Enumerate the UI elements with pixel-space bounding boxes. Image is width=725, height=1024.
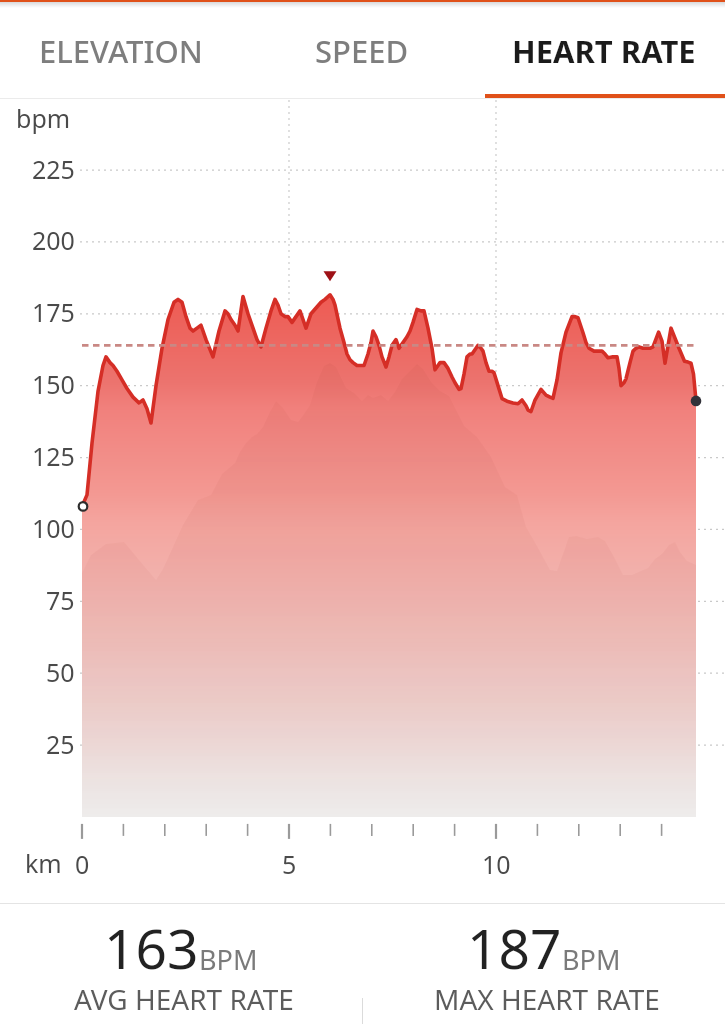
staticText: 5 (282, 847, 297, 881)
staticText: 175 (32, 295, 75, 329)
staticText: 10 (482, 847, 511, 881)
staticText: 163 (104, 910, 199, 985)
button[interactable]: 163 (0, 904, 362, 1024)
staticText: 75 (46, 583, 75, 617)
staticText: 187 (467, 910, 562, 985)
staticText: BPM (199, 941, 258, 978)
button[interactable]: ELEVATION (0, 8, 241, 99)
staticText: 150 (32, 367, 75, 401)
staticText: AVG HEART RATE (74, 980, 294, 1018)
staticText: SPEED (315, 30, 409, 72)
button[interactable]: HEART RATE (483, 8, 725, 99)
staticText: 200 (32, 223, 75, 257)
staticText: km (25, 846, 62, 880)
staticText: 125 (32, 439, 75, 473)
staticText: BPM (562, 941, 621, 978)
staticText: 100 (32, 511, 75, 545)
staticText: HEART RATE (512, 30, 696, 72)
button[interactable]: SPEED (241, 8, 483, 99)
staticText: bpm (16, 101, 71, 135)
button[interactable]: 187 (362, 904, 725, 1024)
staticText: 0 (75, 847, 90, 881)
staticText: 50 (46, 655, 75, 689)
staticText: 225 (32, 152, 75, 186)
staticText: ELEVATION (39, 30, 203, 72)
staticText: 25 (46, 727, 75, 761)
staticText: MAX HEART RATE (434, 980, 660, 1018)
